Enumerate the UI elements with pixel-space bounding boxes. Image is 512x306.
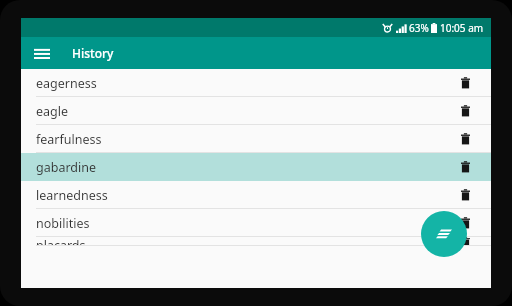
staticText: fearfulness — [36, 131, 102, 148]
button[interactable]: eagerness — [21, 69, 491, 97]
button[interactable]: nobilities — [21, 209, 491, 237]
staticText: eagle — [36, 103, 69, 120]
button[interactable]: placards — [21, 237, 491, 246]
button[interactable]: Delete fearfulness — [453, 127, 477, 151]
button[interactable]: Delete learnedness — [453, 183, 477, 207]
staticText: 10:05 am — [440, 21, 484, 35]
button[interactable]: fearfulness — [21, 125, 491, 153]
staticText: History — [72, 45, 114, 61]
button[interactable]: Delete eagerness — [453, 71, 477, 95]
button[interactable]: eagle — [21, 97, 491, 125]
button[interactable]: Sort — [421, 211, 467, 257]
staticText: eagerness — [36, 75, 97, 92]
staticText: nobilities — [36, 215, 90, 232]
button[interactable]: Delete placards — [453, 237, 477, 246]
button[interactable]: Delete nobilities — [453, 211, 477, 235]
staticText: gabardine — [36, 159, 97, 176]
staticText: learnedness — [36, 187, 108, 204]
button[interactable]: Delete eagle — [453, 99, 477, 123]
button[interactable]: learnedness — [21, 181, 491, 209]
button[interactable]: gabardine — [21, 153, 491, 181]
staticText: 63% — [409, 21, 429, 35]
staticText: placards — [36, 237, 86, 246]
button[interactable]: Delete gabardine — [453, 155, 477, 179]
button[interactable]: Open navigation drawer — [27, 38, 57, 68]
